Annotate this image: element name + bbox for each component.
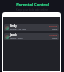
staticText: Phone - 2h 15m bbox=[10, 28, 27, 31]
button[interactable]: Jacob bbox=[4, 33, 59, 40]
staticText: Allowed bbox=[49, 34, 58, 37]
staticText: Blocked bbox=[49, 25, 58, 28]
staticText: Jacob bbox=[10, 33, 17, 37]
staticText: Tablet - 45m bbox=[10, 37, 23, 40]
staticText: Parental Control bbox=[16, 2, 49, 7]
staticText: Emily bbox=[10, 24, 17, 28]
staticText: today bbox=[52, 28, 58, 31]
staticText: today bbox=[52, 37, 58, 40]
button[interactable]: Emily bbox=[4, 24, 59, 31]
staticText: Keep your kids safe online bbox=[16, 8, 48, 12]
